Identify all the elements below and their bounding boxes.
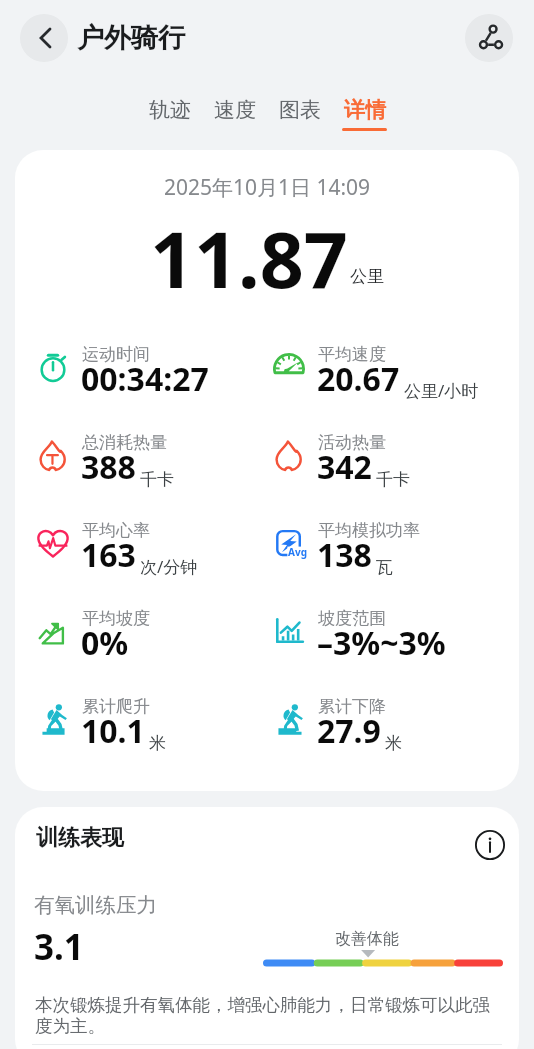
staticText: 累计爬升 (82, 696, 150, 717)
staticText: 00:34:27 (81, 357, 209, 401)
button[interactable]: 轨迹 (147, 97, 192, 131)
staticText: 图表 (279, 97, 321, 123)
staticText: 27.9 (317, 709, 381, 753)
staticText: 运动时间 (82, 344, 150, 365)
staticText: 轨迹 (149, 97, 191, 123)
staticText: Avg (288, 545, 307, 559)
staticText: 户外骑行 (77, 21, 185, 55)
staticText: 342 (317, 445, 372, 489)
staticText: 平均坡度 (82, 608, 150, 629)
staticText: 10.1 (81, 709, 145, 753)
staticText: 平均模拟功率 (318, 520, 420, 541)
button[interactable]: Info (460, 815, 519, 875)
staticText: 388 (81, 445, 136, 489)
button[interactable]: Back (20, 14, 68, 62)
staticText: 163 (81, 533, 136, 577)
staticText: 改善体能 (335, 929, 399, 949)
staticText: 千卡 (376, 469, 410, 490)
staticText: 米 (385, 733, 402, 754)
button[interactable]: 速度 (212, 97, 257, 131)
button[interactable]: Share (465, 14, 513, 62)
staticText: 平均心率 (82, 520, 150, 541)
staticText: –3%~3% (317, 621, 446, 665)
staticText: 2025年10月1日 14:09 (15, 173, 519, 202)
staticText: 千卡 (140, 469, 174, 490)
staticText: 瓦 (376, 557, 393, 578)
staticText: 有氧训练压力 (34, 892, 157, 918)
staticText: 速度 (214, 97, 256, 123)
button[interactable]: 详情 (342, 97, 387, 131)
staticText: 米 (149, 733, 166, 754)
staticText: 20.67 (317, 357, 400, 401)
staticText: 总消耗热量 (82, 432, 167, 453)
button[interactable]: 图表 (277, 97, 322, 131)
staticText: 坡度范围 (318, 608, 386, 629)
staticText: 本次锻炼提升有氧体能，增强心肺能力，日常锻炼可以此强度为主。 (35, 994, 490, 1037)
staticText: 3.1 (34, 923, 84, 971)
staticText: 次/分钟 (140, 555, 198, 578)
staticText: 训练表现 (36, 824, 124, 852)
staticText: 累计下降 (318, 696, 386, 717)
staticText: 公里 (350, 266, 384, 287)
staticText: 详情 (344, 97, 386, 123)
staticText: 11.87 (150, 206, 348, 311)
staticText: 公里/小时 (404, 379, 479, 402)
staticText: 0% (81, 621, 129, 665)
staticText: 138 (317, 533, 372, 577)
staticText: 活动热量 (318, 432, 386, 453)
staticText: 平均速度 (318, 344, 386, 365)
